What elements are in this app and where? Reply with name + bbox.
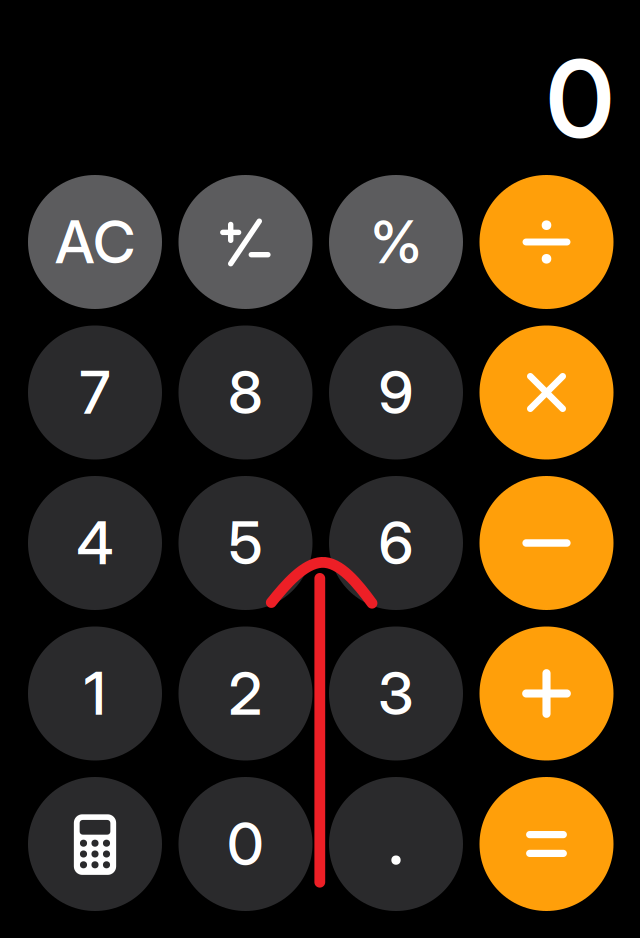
staticText: %: [370, 207, 421, 277]
staticText: 7: [79, 358, 110, 427]
staticText: 8: [228, 358, 263, 427]
button[interactable]: Equals: [479, 777, 613, 911]
staticText: AC: [55, 207, 135, 277]
button[interactable]: Multiply: [479, 325, 613, 459]
staticText: 0: [227, 809, 264, 879]
staticText: 2: [228, 659, 262, 728]
button[interactable]: Decimal point: [329, 777, 463, 911]
staticText: 3: [378, 659, 414, 728]
button[interactable]: Calculator: [28, 777, 162, 911]
staticText: 5: [228, 508, 262, 578]
button[interactable]: 4: [28, 476, 162, 610]
staticText: 1: [84, 659, 106, 728]
staticText: 6: [378, 508, 413, 578]
button[interactable]: 9: [329, 325, 463, 459]
staticText: 4: [76, 508, 113, 578]
button[interactable]: 2: [178, 626, 312, 760]
button[interactable]: 1: [28, 626, 162, 760]
button[interactable]: Minus: [479, 476, 613, 610]
button[interactable]: All Clear: [28, 175, 162, 309]
button[interactable]: 5: [178, 476, 312, 610]
button[interactable]: Percent: [329, 175, 463, 309]
button[interactable]: 6: [329, 476, 463, 610]
button[interactable]: Plus Minus: [178, 175, 312, 309]
button[interactable]: 3: [329, 626, 463, 760]
button[interactable]: 0: [178, 777, 312, 911]
staticText: 9: [378, 358, 413, 427]
button[interactable]: Divide: [479, 175, 613, 309]
button[interactable]: 8: [178, 325, 312, 459]
button[interactable]: 7: [28, 325, 162, 459]
button[interactable]: Plus: [479, 626, 613, 760]
staticText: 0: [546, 36, 614, 161]
